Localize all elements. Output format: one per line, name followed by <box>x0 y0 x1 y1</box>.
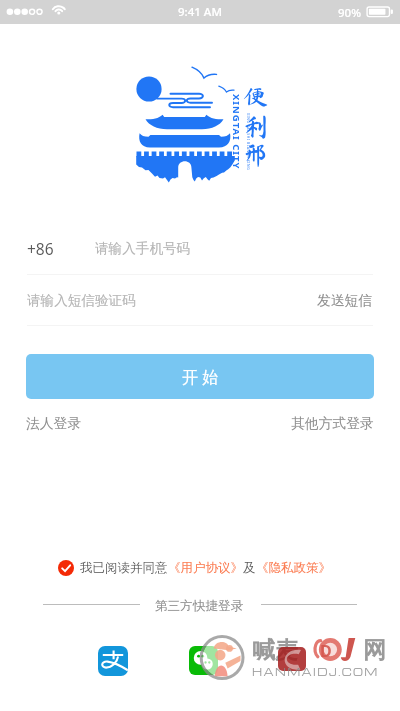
staticText: 第三方快捷登录 <box>155 598 244 614</box>
staticText: +86 <box>27 238 54 259</box>
staticText: 网 <box>363 636 386 665</box>
staticText: 请输入短信验证码 <box>27 292 136 309</box>
staticText: XING TAI SHI BIAN LI XING <box>246 113 251 171</box>
staticText: 发送短信 <box>317 292 373 309</box>
staticText: 其他方式登录 <box>291 415 374 432</box>
button[interactable]: 其他方式登录 <box>285 409 380 438</box>
staticText: XINGTAI CITY <box>230 94 243 170</box>
staticText: 及 <box>243 560 256 576</box>
staticText: 9:41 AM <box>178 4 222 20</box>
staticText: 喊麦 <box>252 636 298 665</box>
button[interactable]: Agree to user agreement and privacy poli… <box>58 560 331 576</box>
button[interactable]: Log in with WeChat <box>189 646 218 675</box>
button[interactable]: 法人登录 <box>20 409 88 438</box>
staticText: 《隐私政策》 <box>256 560 331 576</box>
button[interactable]: 发送短信 <box>317 292 373 309</box>
staticText: 《用户协议》 <box>168 560 243 576</box>
staticText: 法人登录 <box>26 415 82 432</box>
staticText: 便 利 邢 <box>243 84 269 168</box>
staticText: HANMAIDJ.COM <box>252 665 379 679</box>
staticText: 开 始 <box>182 366 219 388</box>
button[interactable]: 开 始 <box>26 354 374 399</box>
staticText: 请输入手机号码 <box>95 240 191 257</box>
staticText: D <box>320 640 332 662</box>
staticText: 90% <box>338 5 361 21</box>
button[interactable]: Log in with Alipay <box>98 646 128 676</box>
staticText: 我已阅读并同意 <box>80 560 168 576</box>
